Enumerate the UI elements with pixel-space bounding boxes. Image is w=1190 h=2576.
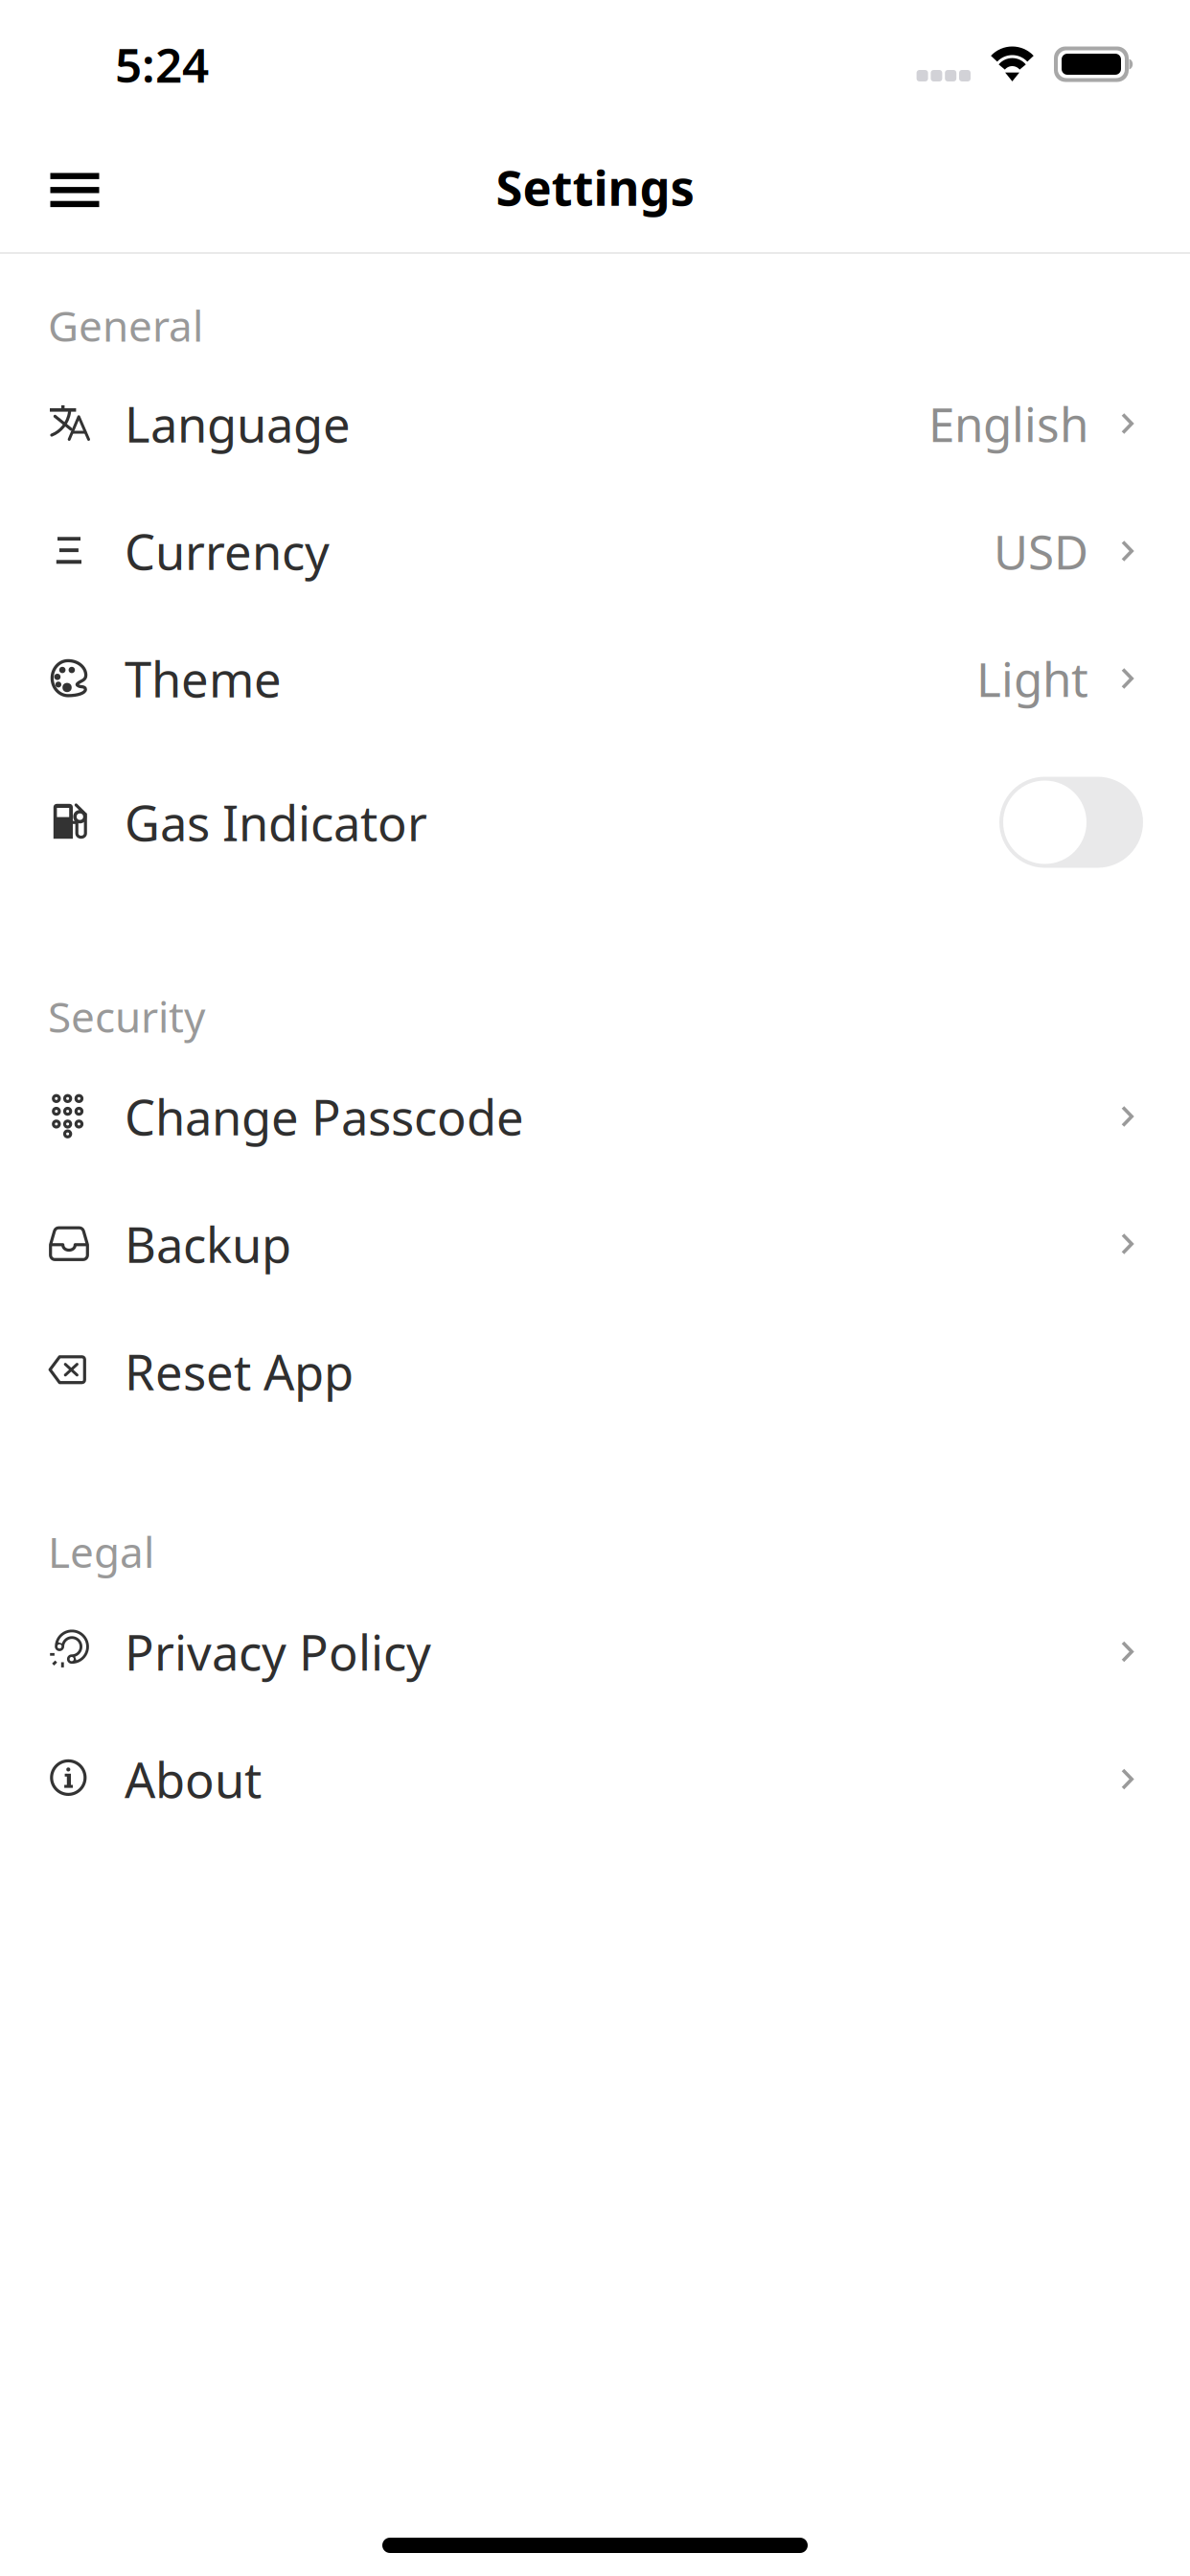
button[interactable]: Gas Indicator xyxy=(999,777,1143,868)
staticText: Currency xyxy=(125,519,330,583)
button[interactable]: About xyxy=(0,1715,1190,1843)
button[interactable]: Change Passcode xyxy=(0,1053,1190,1180)
staticText: Light xyxy=(976,647,1088,710)
button[interactable]: Reset App xyxy=(0,1308,1190,1435)
button[interactable]: Currency xyxy=(0,487,1190,615)
staticText: Change Passcode xyxy=(125,1084,524,1149)
staticText: Security xyxy=(48,988,205,1044)
staticText: About xyxy=(125,1747,262,1811)
staticText: English xyxy=(928,392,1088,455)
staticText: Language xyxy=(125,391,351,456)
staticText: Theme xyxy=(125,646,282,711)
staticText: General xyxy=(48,297,203,353)
button[interactable]: Menu xyxy=(27,142,123,238)
staticText: USD xyxy=(994,520,1088,582)
staticText: 5:24 xyxy=(115,33,209,96)
button[interactable]: Privacy Policy xyxy=(0,1588,1190,1715)
button[interactable]: Language xyxy=(0,360,1190,487)
staticText: Backup xyxy=(125,1212,291,1276)
staticText: Settings xyxy=(496,155,694,219)
staticText: Legal xyxy=(48,1524,154,1580)
staticText: Reset App xyxy=(125,1339,354,1404)
button[interactable]: Backup xyxy=(0,1180,1190,1308)
staticText: Privacy Policy xyxy=(125,1619,431,1684)
staticText: Gas Indicator xyxy=(125,790,427,855)
button[interactable]: Theme xyxy=(0,615,1190,742)
